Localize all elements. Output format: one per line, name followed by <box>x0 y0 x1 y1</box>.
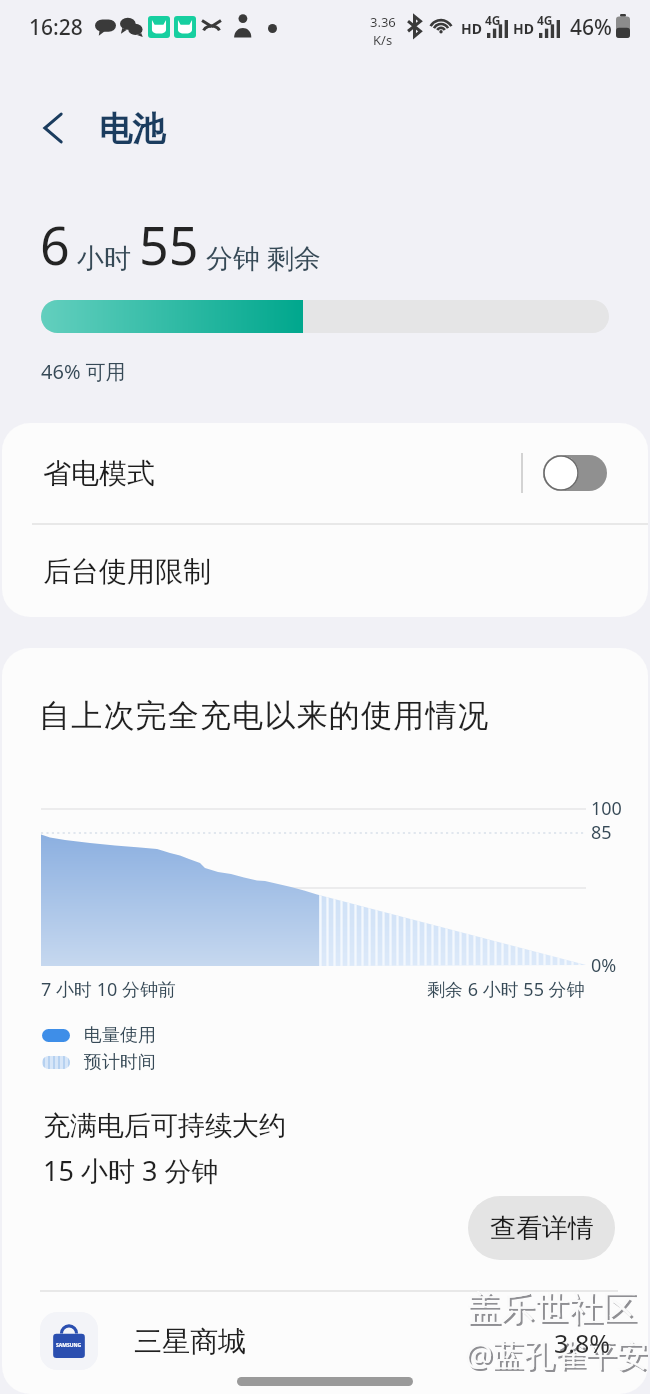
staticText: 16:28 <box>29 13 83 42</box>
staticText: 3.8% <box>554 1326 611 1360</box>
staticText: 预计时间 <box>84 1051 156 1074</box>
staticText: 46% <box>570 13 612 42</box>
staticText: 查看详情 <box>490 1212 594 1245</box>
staticText: 4G <box>537 12 553 28</box>
staticText: 小时 <box>70 239 139 276</box>
staticText: 省电模式 <box>43 456 155 491</box>
staticText: 盖乐世社区 <box>469 1289 639 1332</box>
button[interactable]: SAMSUNG <box>2 1306 648 1376</box>
staticText: 7 小时 10 分钟前 <box>41 977 176 1002</box>
staticText: 0% <box>591 953 617 978</box>
staticText: 电池 <box>99 108 165 150</box>
staticText: 剩余 6 小时 55 分钟 <box>427 977 585 1002</box>
staticText: 55 <box>139 209 199 280</box>
staticText: 分钟 剩余 <box>199 239 322 276</box>
staticText: 15 小时 3 分钟 <box>43 1152 219 1189</box>
button[interactable]: 省电模式 <box>2 423 648 523</box>
staticText: 电量使用 <box>84 1024 156 1047</box>
staticText: HD <box>461 19 482 38</box>
staticText: HD <box>513 19 534 38</box>
staticText: 100 <box>591 796 622 821</box>
staticText: SAMSUNG <box>56 1342 82 1349</box>
staticText: 充满电后可持续大约 <box>43 1109 286 1143</box>
staticText: 85 <box>591 820 612 845</box>
staticText: 46% 可用 <box>41 358 126 385</box>
button[interactable]: Power saving mode toggle <box>543 455 607 491</box>
staticText: 自上次完全充电以来的使用情况 <box>39 696 490 735</box>
button[interactable]: 查看详情 <box>468 1196 615 1260</box>
staticText: 三星商城 <box>134 1324 246 1359</box>
staticText: 6 <box>40 209 70 280</box>
staticText: 3.36 <box>370 13 396 31</box>
staticText: K/s <box>373 31 393 49</box>
button[interactable]: Back <box>29 104 77 152</box>
staticText: 盖乐世社区 <box>467 1287 637 1330</box>
button[interactable]: 后台使用限制 <box>2 525 648 617</box>
staticText: 4G <box>485 12 501 28</box>
staticText: 后台使用限制 <box>43 554 211 589</box>
staticText: @蓝孔雀平安 <box>467 1335 648 1377</box>
staticText: @蓝孔雀平安 <box>465 1333 648 1375</box>
